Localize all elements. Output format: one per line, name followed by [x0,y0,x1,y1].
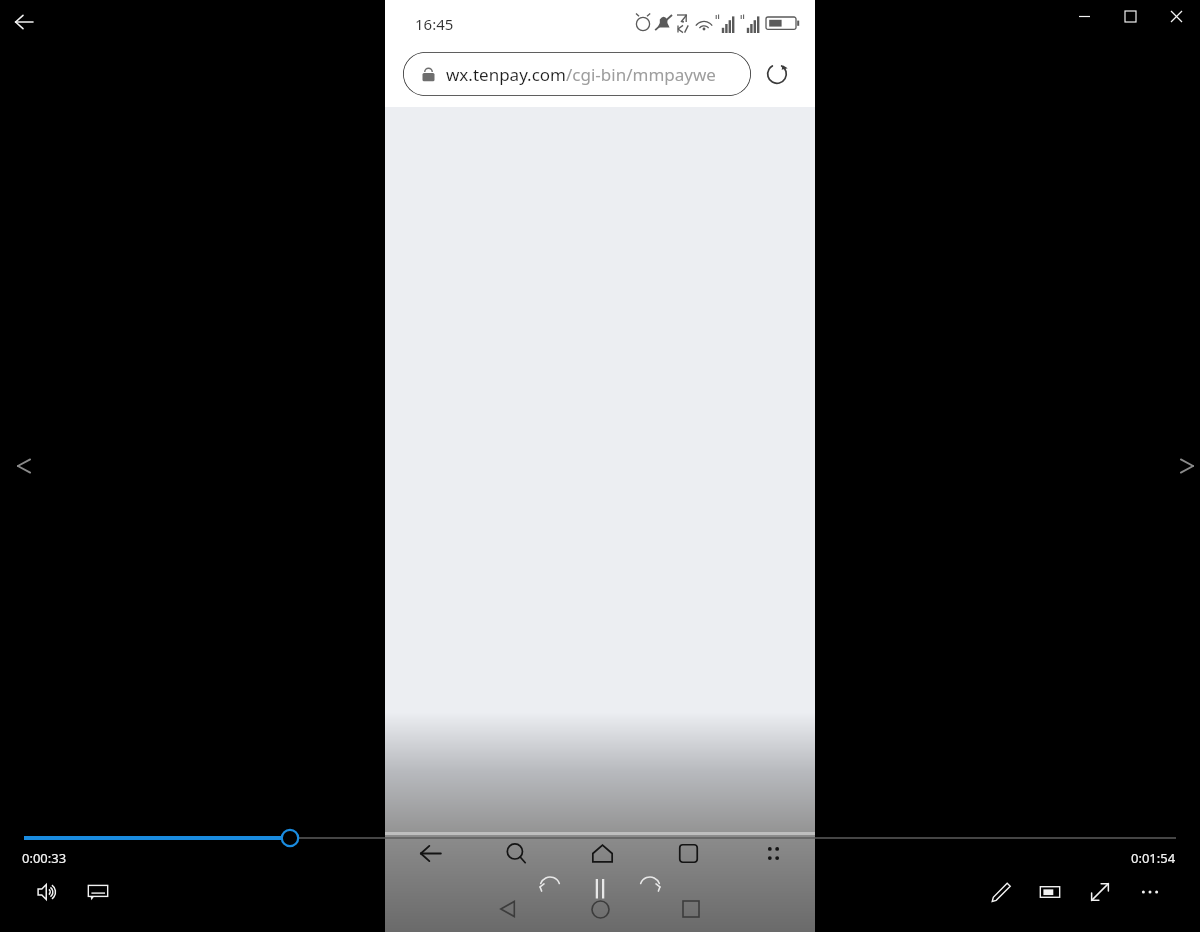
staticText: 0:01:54 [1131,849,1176,867]
button[interactable]: Subtitles [80,874,116,910]
button[interactable]: Close [1153,0,1199,32]
button[interactable]: Home [581,835,623,871]
button[interactable]: Rewind 10 seconds [531,873,569,911]
button[interactable]: Recent apps [673,891,709,927]
button[interactable]: Tabs [667,835,709,871]
button[interactable]: Previous [0,442,48,490]
button[interactable]: Volume [30,874,66,910]
button[interactable]: More options [1132,874,1168,910]
button[interactable]: Seek [14,826,1186,850]
button[interactable]: Minimize [1061,0,1107,32]
button[interactable]: Search [495,835,537,871]
button[interactable]: Pause [581,873,619,911]
button[interactable]: Edit [983,874,1019,910]
staticText: 16:45 [415,14,454,34]
button[interactable]: Menu [752,835,794,871]
button[interactable]: System home [582,891,618,927]
staticText: 0:00:33 [22,849,67,867]
button[interactable]: Stop loading [759,56,795,92]
button[interactable]: Next [1163,442,1200,490]
button[interactable] [403,52,751,96]
button[interactable]: Full screen [1082,874,1118,910]
button[interactable]: Back [4,2,44,42]
button[interactable]: Back [409,835,451,871]
button[interactable]: System back [490,891,526,927]
staticText: wx.tenpay.com/cgi-bin/mmpaywe [446,63,716,86]
button[interactable]: Forward 30 seconds [631,873,669,911]
button[interactable]: Maximize [1107,0,1153,32]
button[interactable]: Mini player [1032,874,1068,910]
